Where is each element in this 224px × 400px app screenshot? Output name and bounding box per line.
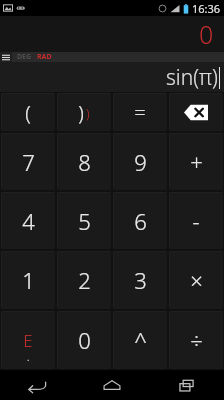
button[interactable]: = <box>113 93 167 131</box>
button[interactable]: sin(π) <box>0 62 224 92</box>
button[interactable]: 6 <box>113 192 167 249</box>
staticText: 9 <box>134 147 147 177</box>
button[interactable]: × <box>169 251 223 309</box>
button[interactable]: Home <box>74 370 149 400</box>
staticText: ( <box>25 99 31 126</box>
button[interactable]: ÷ <box>169 311 223 369</box>
staticText: 0 <box>78 325 91 355</box>
staticText: + <box>190 147 203 177</box>
button[interactable]: DEG <box>17 52 32 62</box>
staticText: RAD <box>37 52 52 62</box>
button[interactable]: Menu <box>0 52 12 62</box>
staticText: × <box>190 265 203 295</box>
staticText: ) <box>78 99 84 126</box>
staticText: 6 <box>134 206 147 236</box>
button[interactable]: 9 <box>113 133 167 190</box>
staticText: ÷ <box>190 325 203 355</box>
button[interactable]: 2 <box>57 251 111 309</box>
staticText: ^ <box>134 325 147 355</box>
button[interactable]: Back <box>0 370 74 400</box>
button[interactable]: ^ <box>113 311 167 369</box>
staticText: 5 <box>78 206 91 236</box>
button[interactable]: ) <box>57 93 111 131</box>
button[interactable]: 8 <box>57 133 111 190</box>
staticText: 2 <box>78 265 91 295</box>
staticText: DEG <box>17 52 32 62</box>
staticText: - <box>192 206 200 236</box>
button[interactable]: + <box>169 133 223 190</box>
staticText: 7 <box>22 147 35 177</box>
staticText: ) <box>86 104 90 122</box>
staticText: 16:36 <box>192 1 221 16</box>
staticText: 0 <box>199 17 214 51</box>
staticText: = <box>134 99 146 126</box>
staticText: 8 <box>78 147 91 177</box>
button[interactable]: Backspace <box>169 93 223 131</box>
button[interactable]: 4 <box>1 192 55 249</box>
staticText: 1 <box>22 265 35 295</box>
button[interactable]: - <box>169 192 223 249</box>
button[interactable]: Recent apps <box>149 370 224 400</box>
staticText: 3 <box>134 265 147 295</box>
button[interactable]: 5 <box>57 192 111 249</box>
button[interactable]: RAD <box>37 52 52 62</box>
staticText: 4 <box>22 206 35 236</box>
button[interactable]: 3 <box>113 251 167 309</box>
button[interactable]: 1 <box>1 251 55 309</box>
staticText: sin(π) <box>166 63 218 92</box>
staticText: . <box>27 351 30 363</box>
staticText: E <box>23 329 33 352</box>
button[interactable]: E <box>1 311 55 369</box>
button[interactable]: ( <box>1 93 55 131</box>
button[interactable]: 7 <box>1 133 55 190</box>
button[interactable]: 0 <box>57 311 111 369</box>
